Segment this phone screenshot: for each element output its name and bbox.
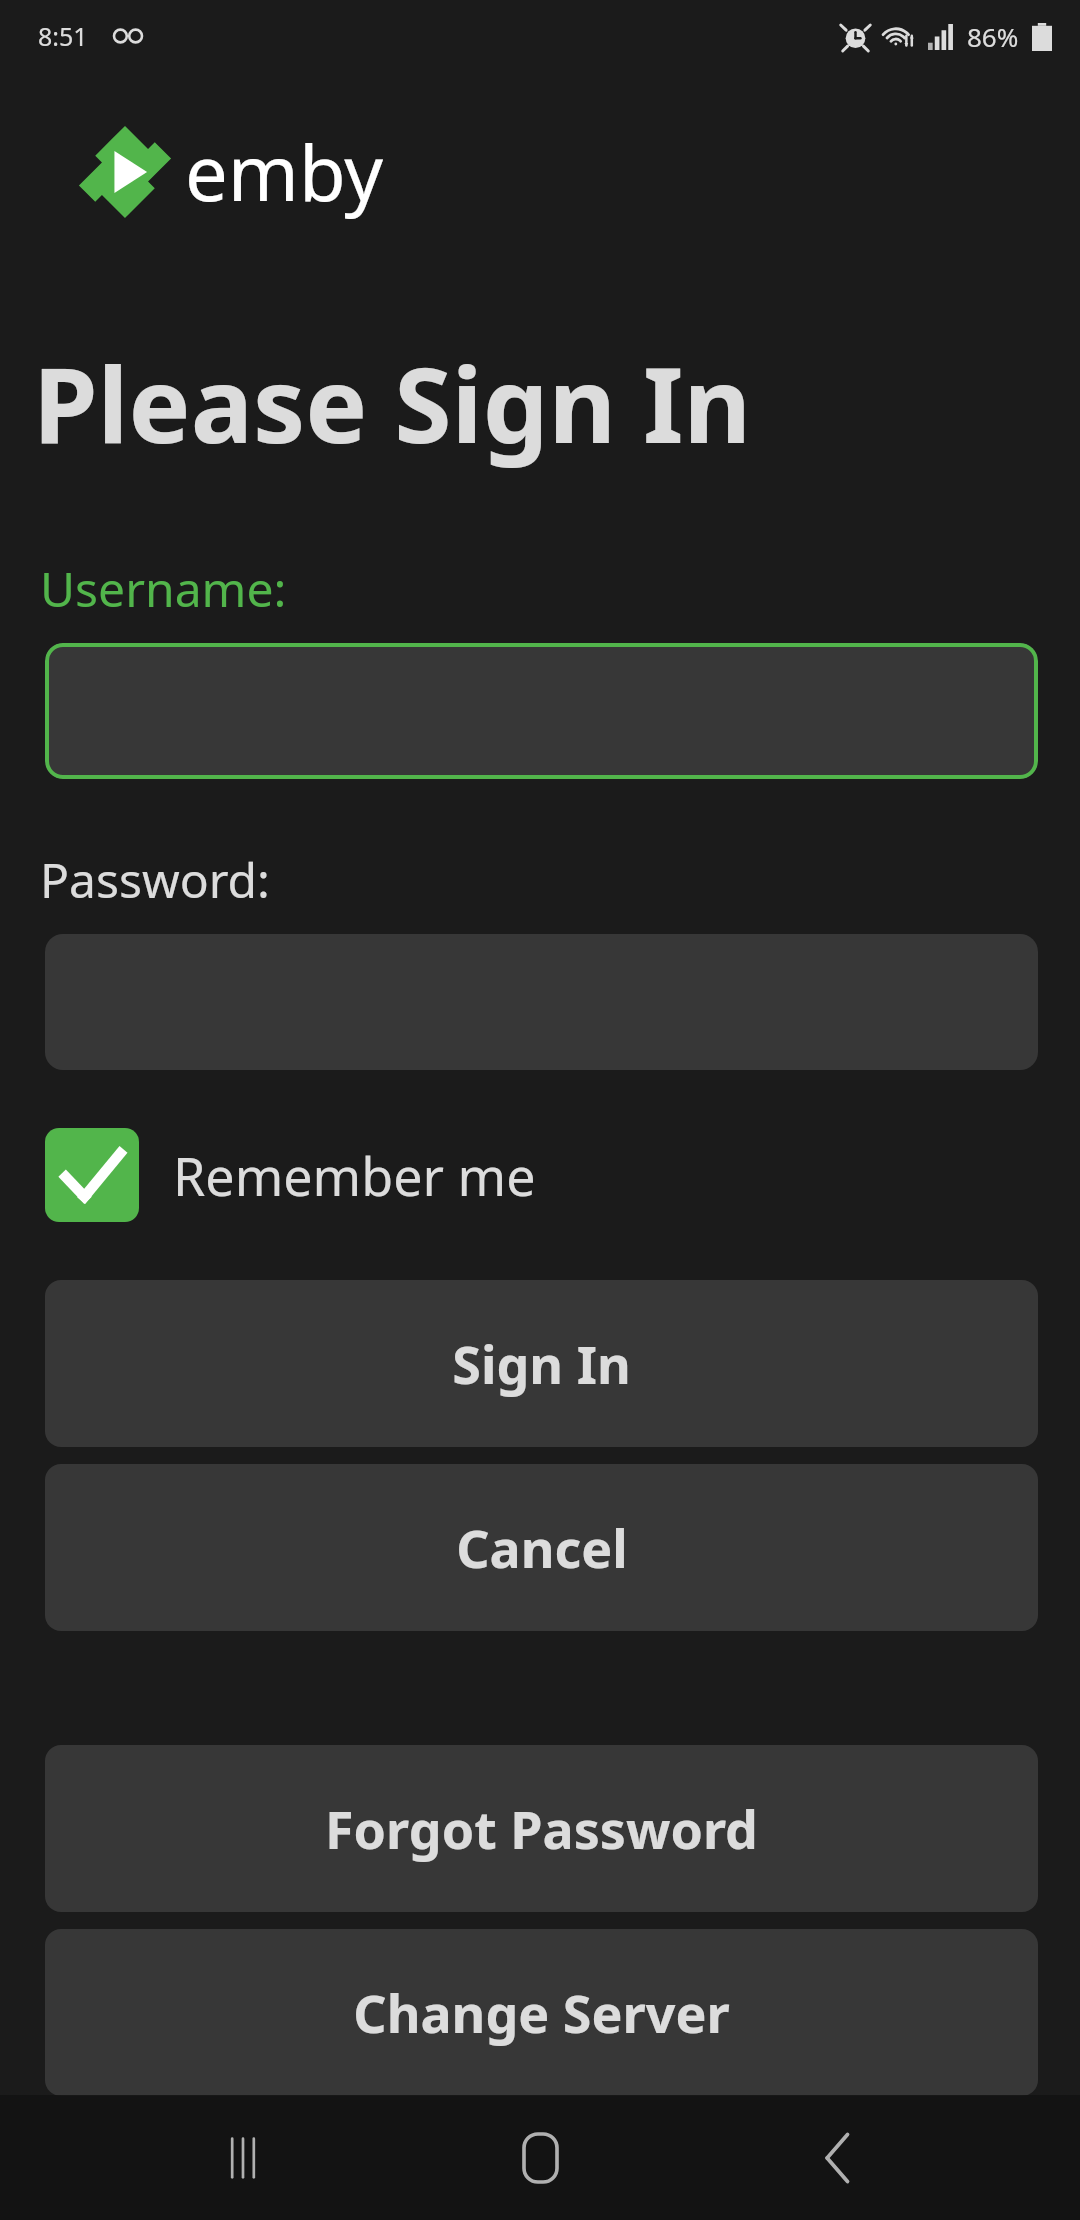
button[interactable]: Sign In [45,1280,1038,1447]
staticText: Change Server [353,1977,730,2048]
staticText: Forgot Password [325,1793,758,1864]
button[interactable]: Recent apps [188,2103,298,2213]
staticText: Remember me [173,1140,536,1211]
button[interactable] [45,643,1038,779]
staticText: Cancel [456,1512,628,1583]
button[interactable]: Forgot Password [45,1745,1038,1912]
button[interactable]: Cancel [45,1464,1038,1631]
button[interactable]: Home [485,2103,595,2213]
staticText: emby [185,120,383,224]
staticText: Sign In [452,1328,631,1399]
staticText: Please Sign In [33,332,752,474]
staticText: 8:51 [38,19,88,53]
button[interactable]: Back [783,2103,893,2213]
staticText: Password: [40,847,270,912]
staticText: 86% [967,19,1019,54]
button[interactable]: Change Server [45,1929,1038,2096]
other: Remember me checkbox [45,1128,139,1222]
button[interactable]: Remember me checkbox [45,1128,536,1222]
staticText: Username: [40,556,287,621]
